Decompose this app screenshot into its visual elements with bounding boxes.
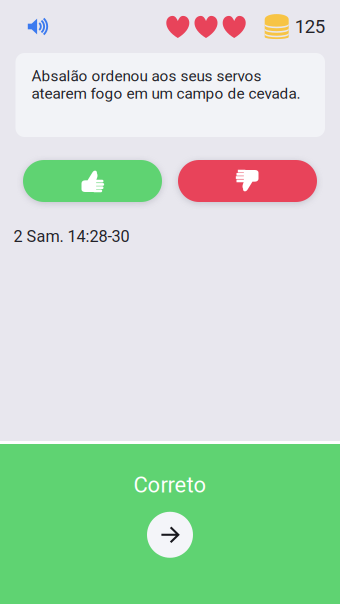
- staticText: 125: [295, 16, 325, 37]
- button[interactable]: Next question: [147, 512, 193, 558]
- staticText: Correto: [133, 472, 206, 498]
- button[interactable]: True: [23, 160, 162, 202]
- button[interactable]: False: [178, 160, 317, 202]
- staticText: Absalão ordenou aos seus servos atearem …: [31, 67, 300, 102]
- staticText: 2 Sam. 14:28-30: [14, 227, 130, 246]
- button[interactable]: Play audio: [22, 10, 54, 42]
